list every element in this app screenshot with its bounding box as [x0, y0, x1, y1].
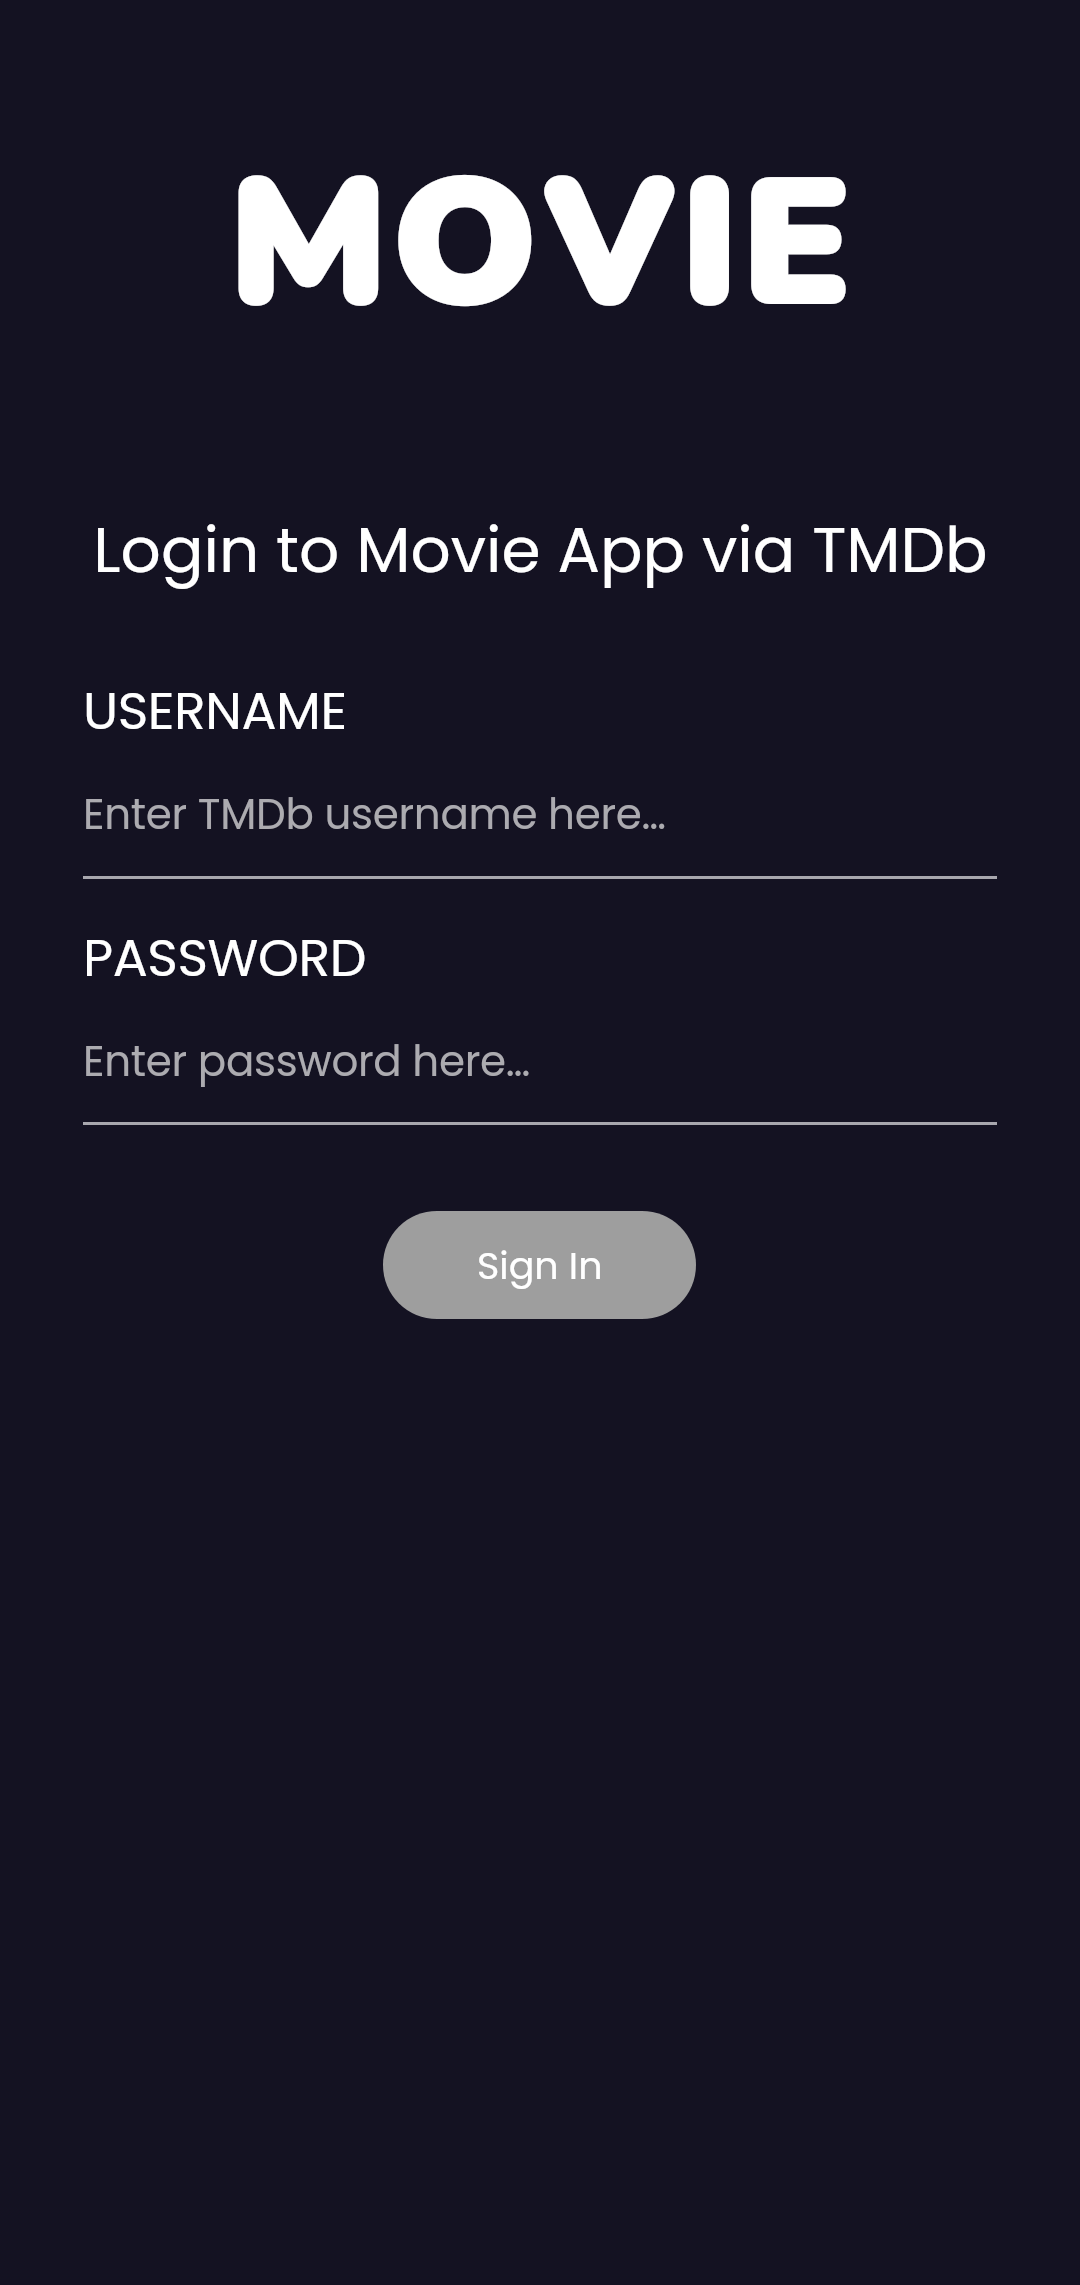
- staticText: Enter password here…: [83, 1032, 530, 1091]
- staticText: Enter TMDb username here…: [83, 785, 666, 844]
- staticText: PASSWORD: [83, 921, 367, 994]
- button[interactable]: Sign In: [383, 1211, 696, 1319]
- staticText: Sign In: [477, 1239, 603, 1292]
- staticText: USERNAME: [83, 674, 347, 747]
- button[interactable]: PASSWORD: [0, 907, 1080, 1125]
- staticText: Login to Movie App via TMDb: [93, 506, 988, 594]
- button[interactable]: USERNAME: [0, 660, 1080, 879]
